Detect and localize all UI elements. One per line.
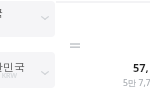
other: Select currency (41, 71, 49, 75)
button[interactable]: 대한민국 (0, 52, 55, 88)
button[interactable]: 미국 (0, 1, 55, 37)
staticText: 5만 7,7 (123, 77, 150, 89)
other: Select currency (41, 16, 49, 20)
staticText: 미국 (0, 6, 3, 20)
staticText: 국 원 - KRW (0, 71, 17, 81)
staticText: 대한민국 (0, 60, 25, 74)
staticText: 57, (133, 60, 149, 75)
